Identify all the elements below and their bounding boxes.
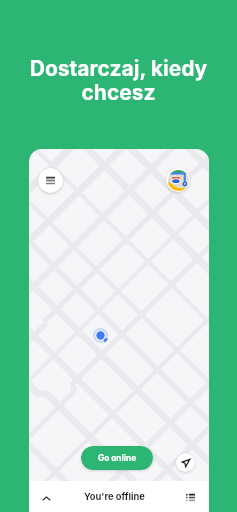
- button[interactable]: Google Maps: [166, 168, 190, 192]
- staticText: Dostarczaj, kiedy chcesz: [16, 56, 221, 105]
- staticText: You're offline: [84, 491, 145, 502]
- button[interactable]: List: [180, 487, 200, 507]
- button[interactable]: Menu: [38, 168, 63, 193]
- button[interactable]: Navigate: [176, 453, 195, 472]
- button[interactable]: Expand: [36, 488, 56, 508]
- staticText: Go online: [98, 453, 137, 463]
- button[interactable]: Go online: [81, 446, 153, 470]
